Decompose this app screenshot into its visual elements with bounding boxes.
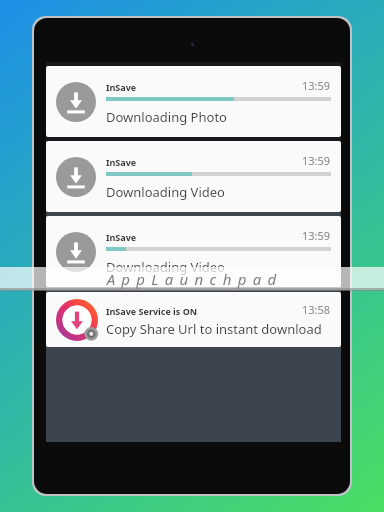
staticText: 13:59 bbox=[302, 228, 331, 243]
staticText: InSave bbox=[106, 156, 302, 168]
staticText: Downloading Video bbox=[106, 258, 225, 276]
staticText: Downloading Photo bbox=[106, 108, 227, 126]
button[interactable]: Download bbox=[46, 141, 341, 212]
staticText: InSave bbox=[106, 231, 302, 243]
staticText: Downloading Video bbox=[106, 183, 225, 201]
staticText: InSave Service is ON bbox=[106, 305, 302, 317]
button[interactable]: Download bbox=[46, 216, 341, 287]
staticText: 13:59 bbox=[302, 153, 331, 168]
staticText: InSave bbox=[106, 81, 302, 93]
staticText: 13:58 bbox=[302, 302, 331, 317]
other: Download bbox=[56, 232, 96, 272]
other: Download bbox=[56, 157, 96, 197]
staticText: Copy Share Url to instant download bbox=[106, 320, 322, 338]
button[interactable]: InSave service bbox=[46, 292, 341, 347]
other: Download bbox=[56, 82, 96, 122]
button[interactable]: Download bbox=[46, 66, 341, 137]
other: InSave service bbox=[56, 299, 98, 341]
staticText: 13:59 bbox=[302, 78, 331, 93]
staticText: A p p L a u n c h p a d bbox=[0, 269, 384, 289]
